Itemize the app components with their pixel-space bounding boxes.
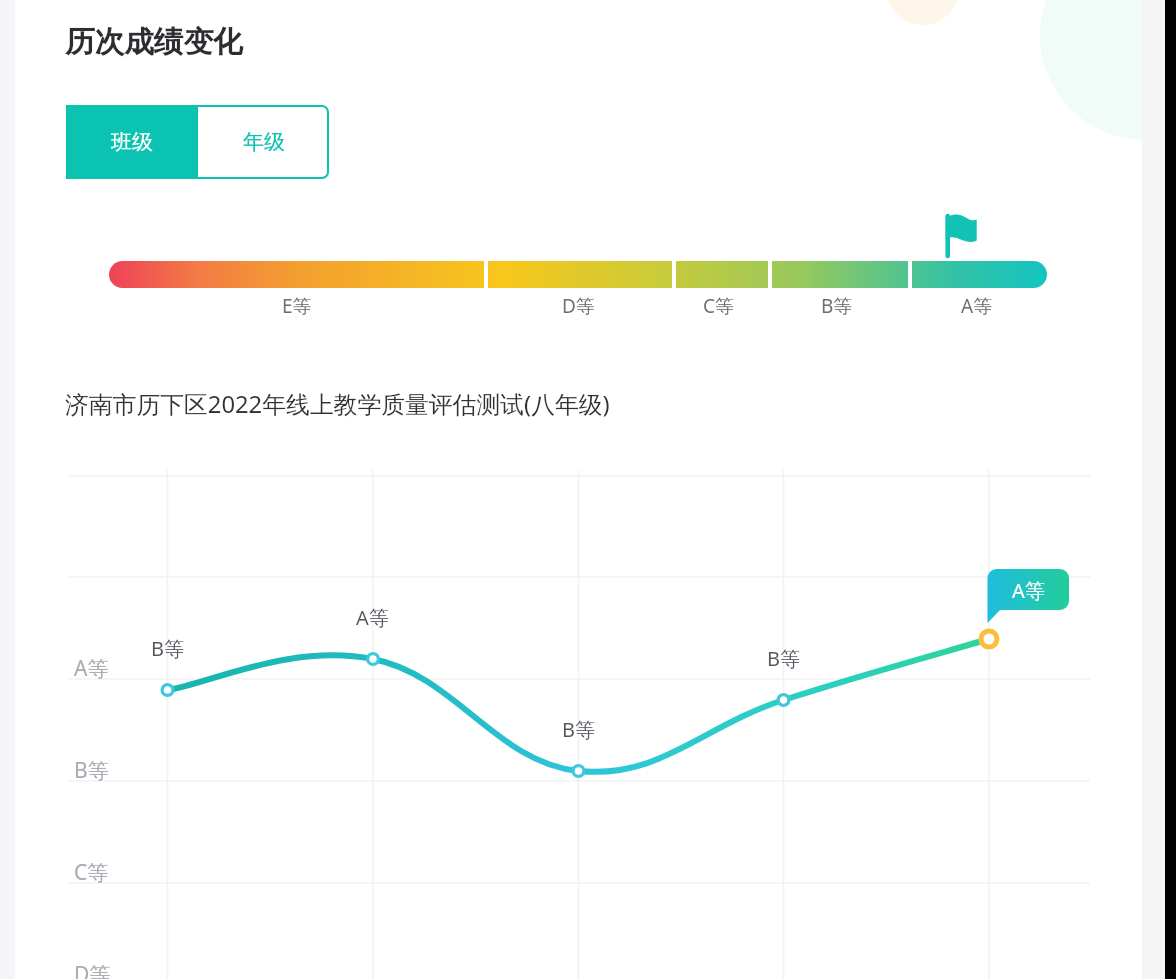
staticText: C等 [703,293,735,319]
staticText: A等 [961,293,993,319]
button[interactable]: 年级 [198,105,329,179]
staticText: D等 [74,960,111,979]
staticText: E等 [282,293,312,319]
staticText: C等 [74,858,109,887]
staticText: B等 [562,716,595,743]
button[interactable]: 数据点 B等 [563,755,595,787]
button[interactable]: 数据点 B等 [152,674,184,706]
staticText: 济南市历下区2022年线上教学质量评估测试(八年级) [65,388,610,421]
staticText: B等 [767,645,800,672]
staticText: 年级 [243,129,285,155]
staticText: A等 [1012,577,1045,604]
staticText: B等 [151,635,184,662]
button[interactable]: 班级 [66,105,198,179]
button[interactable]: A等 [987,569,1069,611]
staticText: 历次成绩变化 [65,23,243,60]
button[interactable]: 数据点 B等 [768,684,800,716]
staticText: A等 [356,604,389,631]
button[interactable]: 数据点 A等 [357,643,389,675]
staticText: B等 [821,293,853,319]
staticText: D等 [562,293,595,319]
staticText: B等 [74,756,109,785]
staticText: A等 [74,654,109,683]
staticText: 班级 [111,129,153,155]
button[interactable]: 数据点 A等 [973,623,1005,655]
